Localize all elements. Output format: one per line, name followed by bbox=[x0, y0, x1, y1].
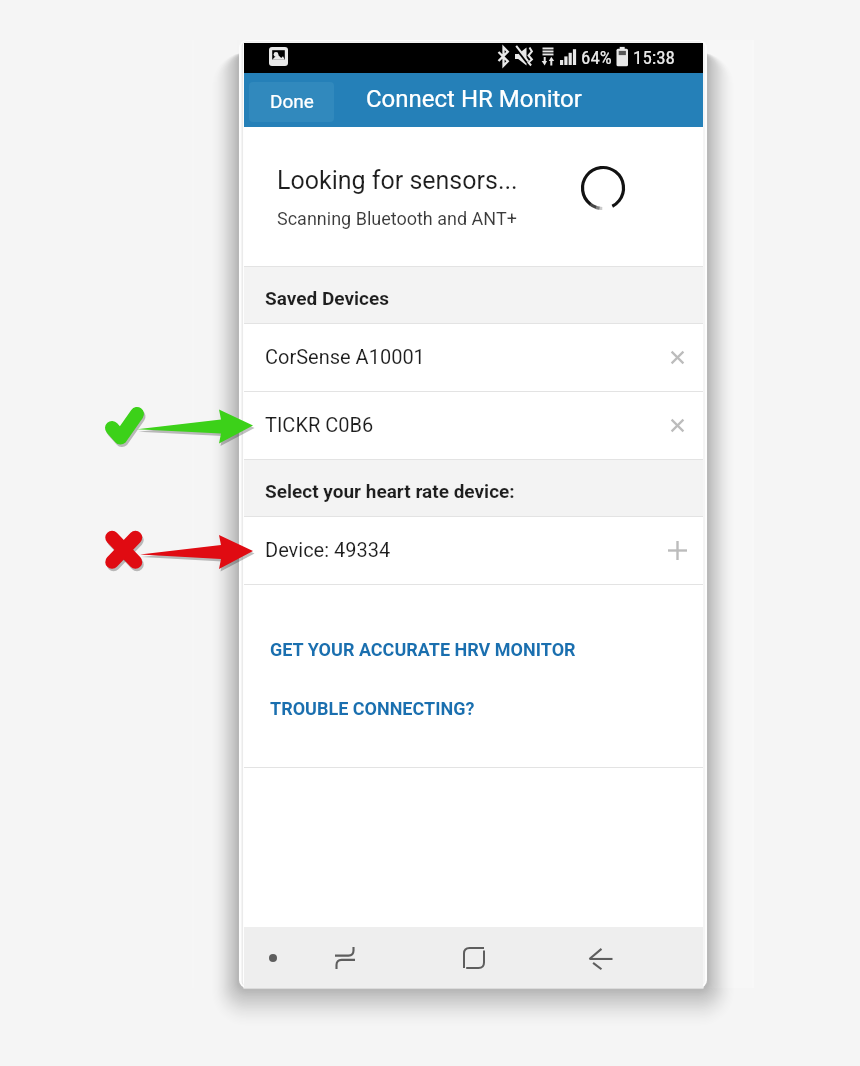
button[interactable]: Device: 49334 bbox=[244, 517, 703, 584]
button[interactable]: Home bbox=[388, 927, 559, 988]
button[interactable]: Back bbox=[559, 927, 643, 988]
staticText: 15:38 bbox=[633, 46, 675, 68]
staticText: Scanning Bluetooth and ANT+ bbox=[277, 208, 517, 229]
button[interactable]: Connect HR Monitor bbox=[244, 73, 703, 127]
staticText: TROUBLE CONNECTING? bbox=[270, 698, 475, 719]
button[interactable]: Remove device bbox=[657, 337, 697, 377]
button[interactable]: Menu bbox=[244, 927, 301, 988]
staticText: CorSense A10001 bbox=[265, 345, 425, 368]
button[interactable]: TROUBLE CONNECTING? bbox=[266, 694, 479, 723]
staticText: Looking for sensors... bbox=[277, 166, 518, 195]
staticText: 64% bbox=[581, 46, 612, 68]
button[interactable]: Add device bbox=[657, 530, 697, 570]
button[interactable]: Done bbox=[249, 82, 334, 122]
button[interactable]: GET YOUR ACCURATE HRV MONITOR bbox=[266, 635, 580, 664]
button[interactable]: CorSense A10001 bbox=[244, 324, 703, 391]
staticText: Connect HR Monitor bbox=[366, 85, 582, 113]
button[interactable]: TICKR C0B6 bbox=[244, 392, 703, 459]
staticText: TICKR C0B6 bbox=[265, 413, 374, 436]
button[interactable]: Remove device bbox=[657, 405, 697, 445]
staticText: Saved Devices bbox=[265, 287, 389, 309]
staticText: GET YOUR ACCURATE HRV MONITOR bbox=[270, 639, 576, 660]
button[interactable]: Recent apps bbox=[301, 927, 388, 988]
staticText: Done bbox=[270, 90, 314, 112]
staticText: Device: 49334 bbox=[265, 538, 391, 561]
staticText: Select your heart rate device: bbox=[265, 480, 515, 502]
